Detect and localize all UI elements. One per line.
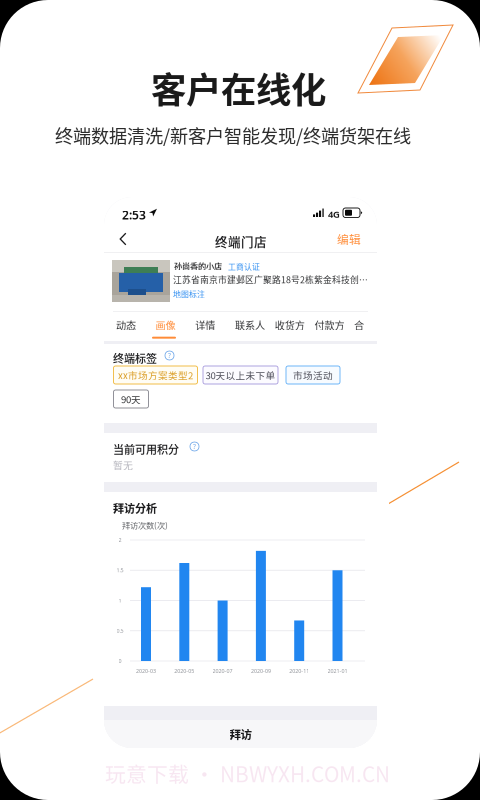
- staticText: 收货方: [275, 318, 305, 332]
- button[interactable]: 画像: [150, 311, 182, 339]
- staticText: 2020-03: [136, 667, 156, 675]
- button[interactable]: 合: [348, 311, 370, 339]
- staticText: 2020-11: [289, 667, 309, 675]
- staticText: 30天以上未下单: [205, 368, 275, 382]
- staticText: 暂无: [113, 458, 133, 472]
- staticText: 2:53: [122, 207, 146, 223]
- staticText: 2020-09: [251, 667, 271, 675]
- staticText: 2020-07: [213, 667, 233, 675]
- staticText: 拜访: [229, 726, 251, 742]
- button[interactable]: Back: [108, 226, 138, 252]
- staticText: 终端数据清洗/新客户智能发现/终端货架在线: [55, 122, 411, 148]
- staticText: 画像: [156, 318, 176, 332]
- button[interactable]: 动态: [110, 311, 142, 339]
- staticText: 终端标签: [113, 350, 157, 366]
- staticText: 0: [118, 657, 121, 665]
- staticText: 付款方: [314, 318, 344, 332]
- staticText: 孙尚香的小店: [174, 260, 222, 272]
- staticText: 地图标注: [173, 288, 205, 299]
- staticText: 拜访次数(次): [122, 519, 168, 531]
- staticText: 1.5: [116, 567, 123, 574]
- staticText: 工商认证: [228, 260, 260, 272]
- staticText: 1: [118, 597, 121, 604]
- staticText: 江苏省南京市建邺区广聚路18号2栋紫金科技创…: [173, 273, 368, 286]
- staticText: 当前可用积分: [113, 441, 179, 457]
- staticText: 0.5: [116, 627, 123, 634]
- staticText: 2021-01: [327, 667, 347, 675]
- button[interactable]: 收货方: [269, 311, 311, 339]
- staticText: 2020-05: [174, 667, 194, 675]
- button[interactable]: 拜访: [104, 720, 377, 748]
- staticText: 合: [354, 318, 364, 332]
- staticText: 详情: [195, 318, 215, 332]
- staticText: xx市场方案类型2: [118, 368, 193, 382]
- staticText: 市场活动: [293, 368, 333, 382]
- staticText: 终端门店: [215, 232, 267, 250]
- staticText: 编辑: [337, 230, 361, 247]
- staticText: 拜访分析: [113, 500, 157, 516]
- staticText: 动态: [116, 318, 136, 332]
- staticText: 90天: [121, 392, 141, 406]
- button[interactable]: 编辑: [331, 226, 367, 252]
- button[interactable]: 联系人: [229, 311, 271, 339]
- staticText: ?: [168, 351, 171, 360]
- staticText: 联系人: [235, 318, 265, 332]
- button[interactable]: 付款方: [308, 311, 350, 339]
- staticText: 客户在线化: [151, 62, 326, 113]
- button[interactable]: 详情: [189, 311, 221, 339]
- staticText: ?: [193, 442, 196, 451]
- staticText: 玩意下载 · NBWYXH.COM.CN: [105, 758, 390, 788]
- staticText: 2: [118, 536, 121, 544]
- staticText: 4G: [328, 208, 340, 220]
